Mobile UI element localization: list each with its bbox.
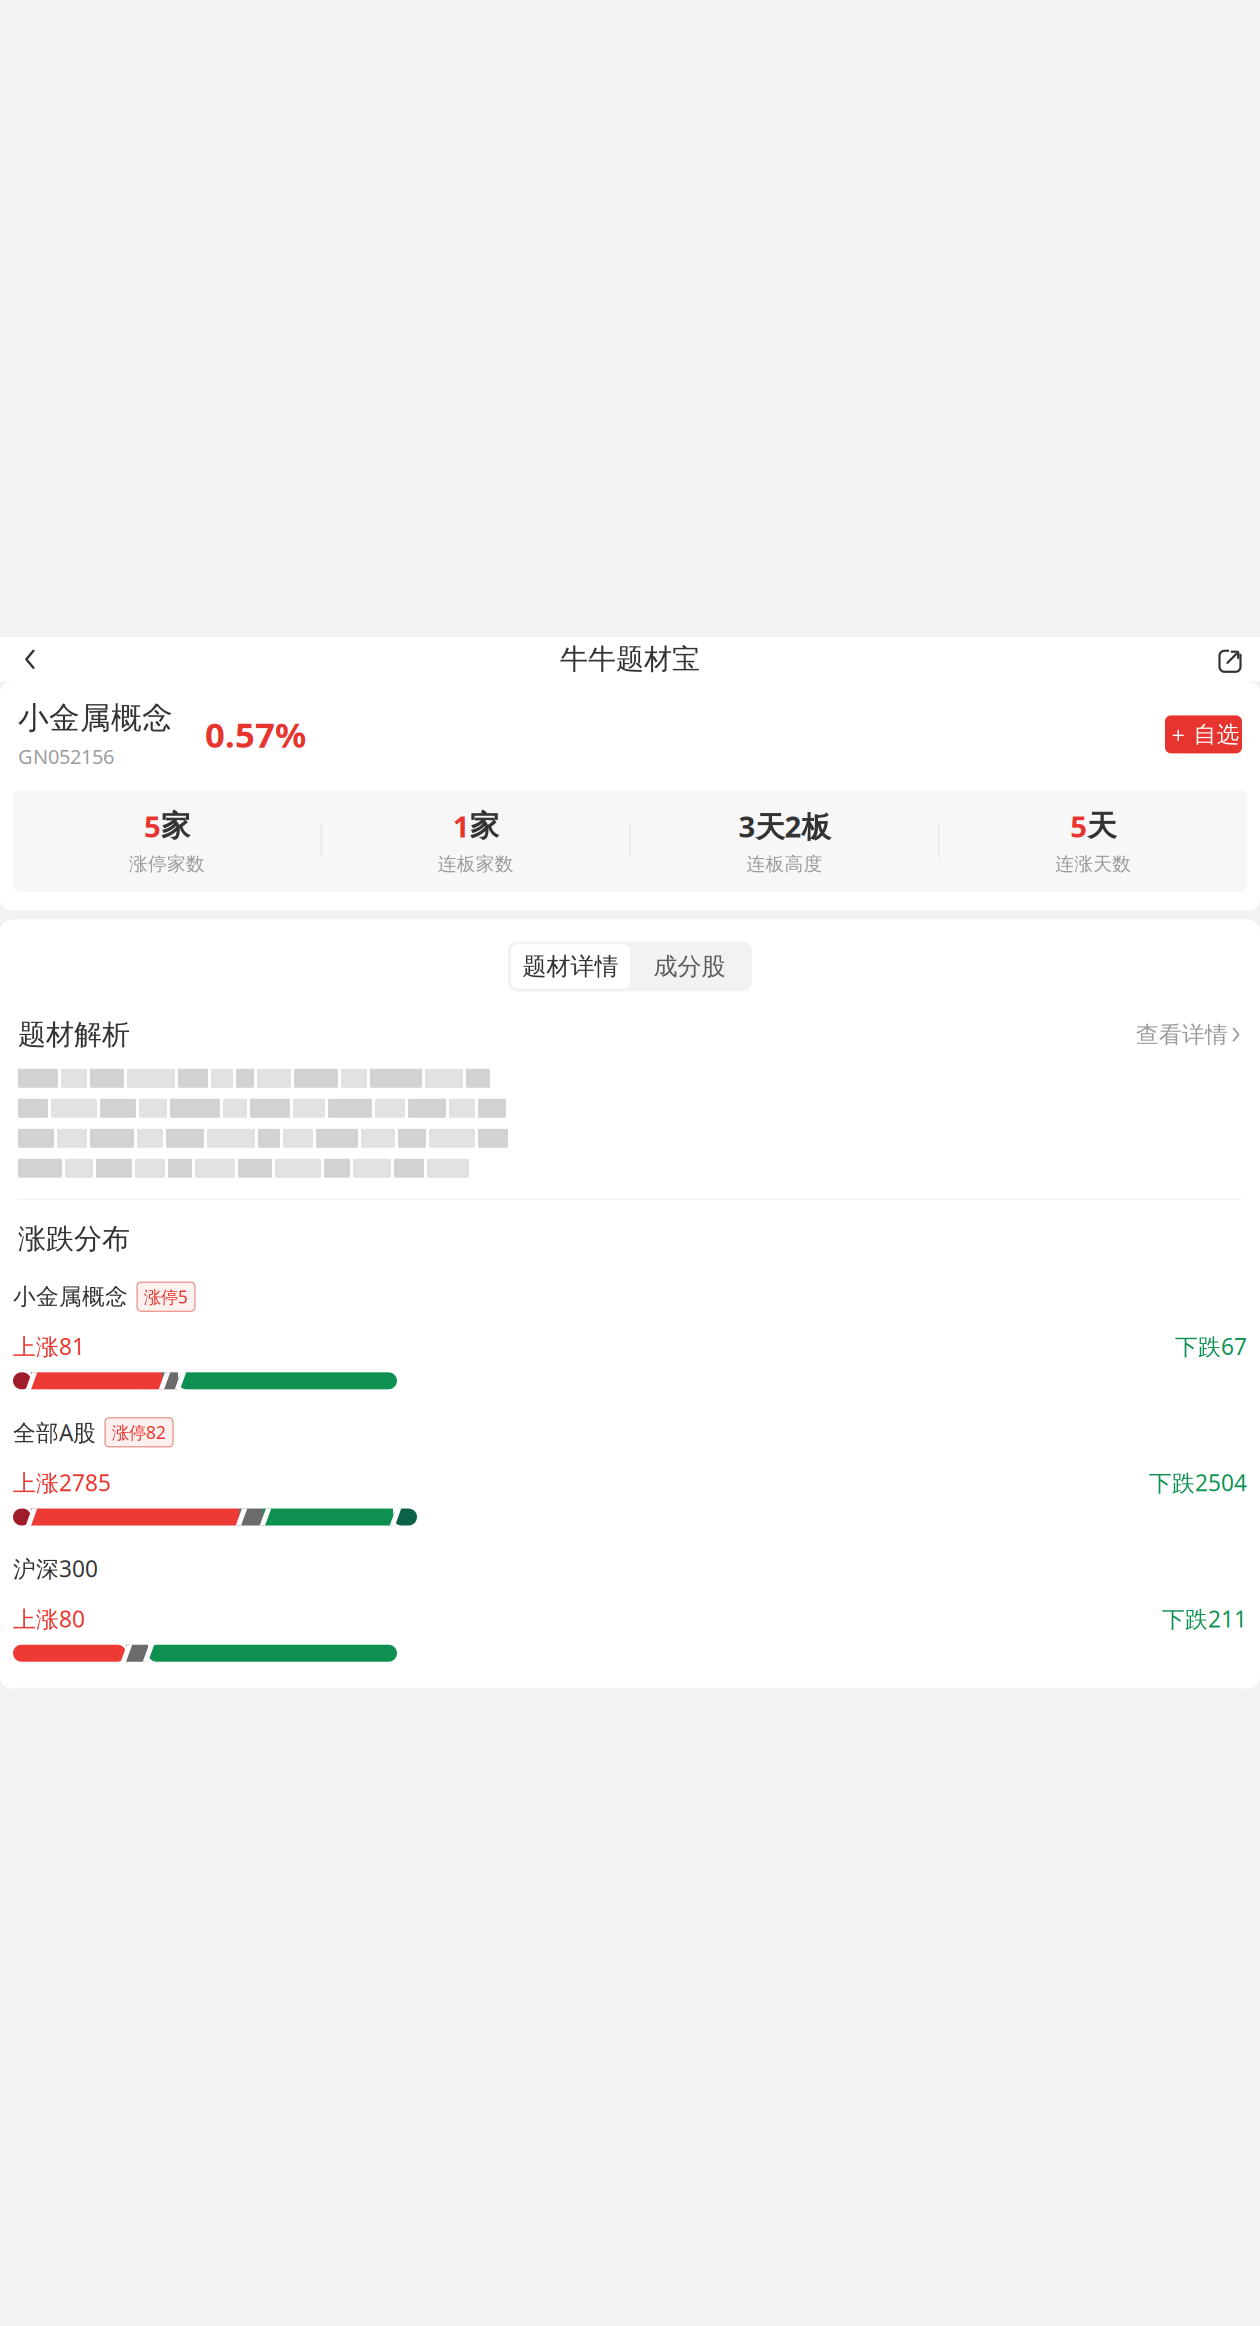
staticText: 天2板 bbox=[755, 806, 830, 845]
staticText: 0.57% bbox=[205, 711, 306, 757]
staticText: 下跌2504 bbox=[1149, 1467, 1247, 1497]
staticText: 连板高度 bbox=[746, 852, 822, 875]
staticText: 成分股 bbox=[653, 952, 725, 981]
staticText: 题材解析 bbox=[18, 1017, 130, 1052]
button[interactable]: 返回 bbox=[4, 637, 56, 681]
staticText: 连板家数 bbox=[438, 852, 514, 875]
staticText: 小金属概念 bbox=[13, 1283, 128, 1311]
staticText: 全部A股 bbox=[13, 1417, 96, 1447]
staticText: 上涨81 bbox=[13, 1331, 85, 1361]
button[interactable]: ＋ bbox=[1165, 715, 1242, 753]
staticText: 牛牛题材宝 bbox=[560, 642, 700, 676]
staticText: 1 bbox=[453, 806, 470, 845]
button[interactable]: 成分股 bbox=[630, 944, 749, 988]
staticText: 题材详情 bbox=[522, 952, 618, 981]
staticText: 上涨80 bbox=[13, 1604, 85, 1634]
staticText: 涨停家数 bbox=[129, 852, 205, 875]
staticText: 小金属概念 bbox=[18, 699, 173, 737]
staticText: 3 bbox=[738, 806, 755, 845]
staticText: GN052156 bbox=[18, 743, 114, 770]
staticText: 5 bbox=[1070, 806, 1087, 845]
staticText: 5 bbox=[144, 806, 161, 845]
staticText: 下跌211 bbox=[1162, 1604, 1247, 1634]
button[interactable]: 查看详情 bbox=[1136, 1021, 1242, 1048]
staticText: 查看详情 bbox=[1136, 1021, 1228, 1048]
button[interactable]: 题材详情 bbox=[511, 944, 630, 988]
button[interactable]: 分享 bbox=[1204, 637, 1256, 681]
staticText: 上涨2785 bbox=[13, 1467, 111, 1497]
staticText: 涨停5 bbox=[144, 1285, 188, 1308]
staticText: ＋ bbox=[1167, 721, 1188, 747]
staticText: 家 bbox=[161, 808, 190, 844]
staticText: 沪深300 bbox=[13, 1553, 98, 1584]
staticText: 天 bbox=[1087, 808, 1116, 844]
staticText: 连涨天数 bbox=[1055, 852, 1131, 875]
staticText: 家 bbox=[470, 808, 499, 844]
staticText: 下跌67 bbox=[1175, 1331, 1247, 1361]
staticText: 涨跌分布 bbox=[18, 1222, 130, 1256]
staticText: 自选 bbox=[1193, 720, 1239, 748]
staticText: 涨停82 bbox=[112, 1421, 166, 1444]
